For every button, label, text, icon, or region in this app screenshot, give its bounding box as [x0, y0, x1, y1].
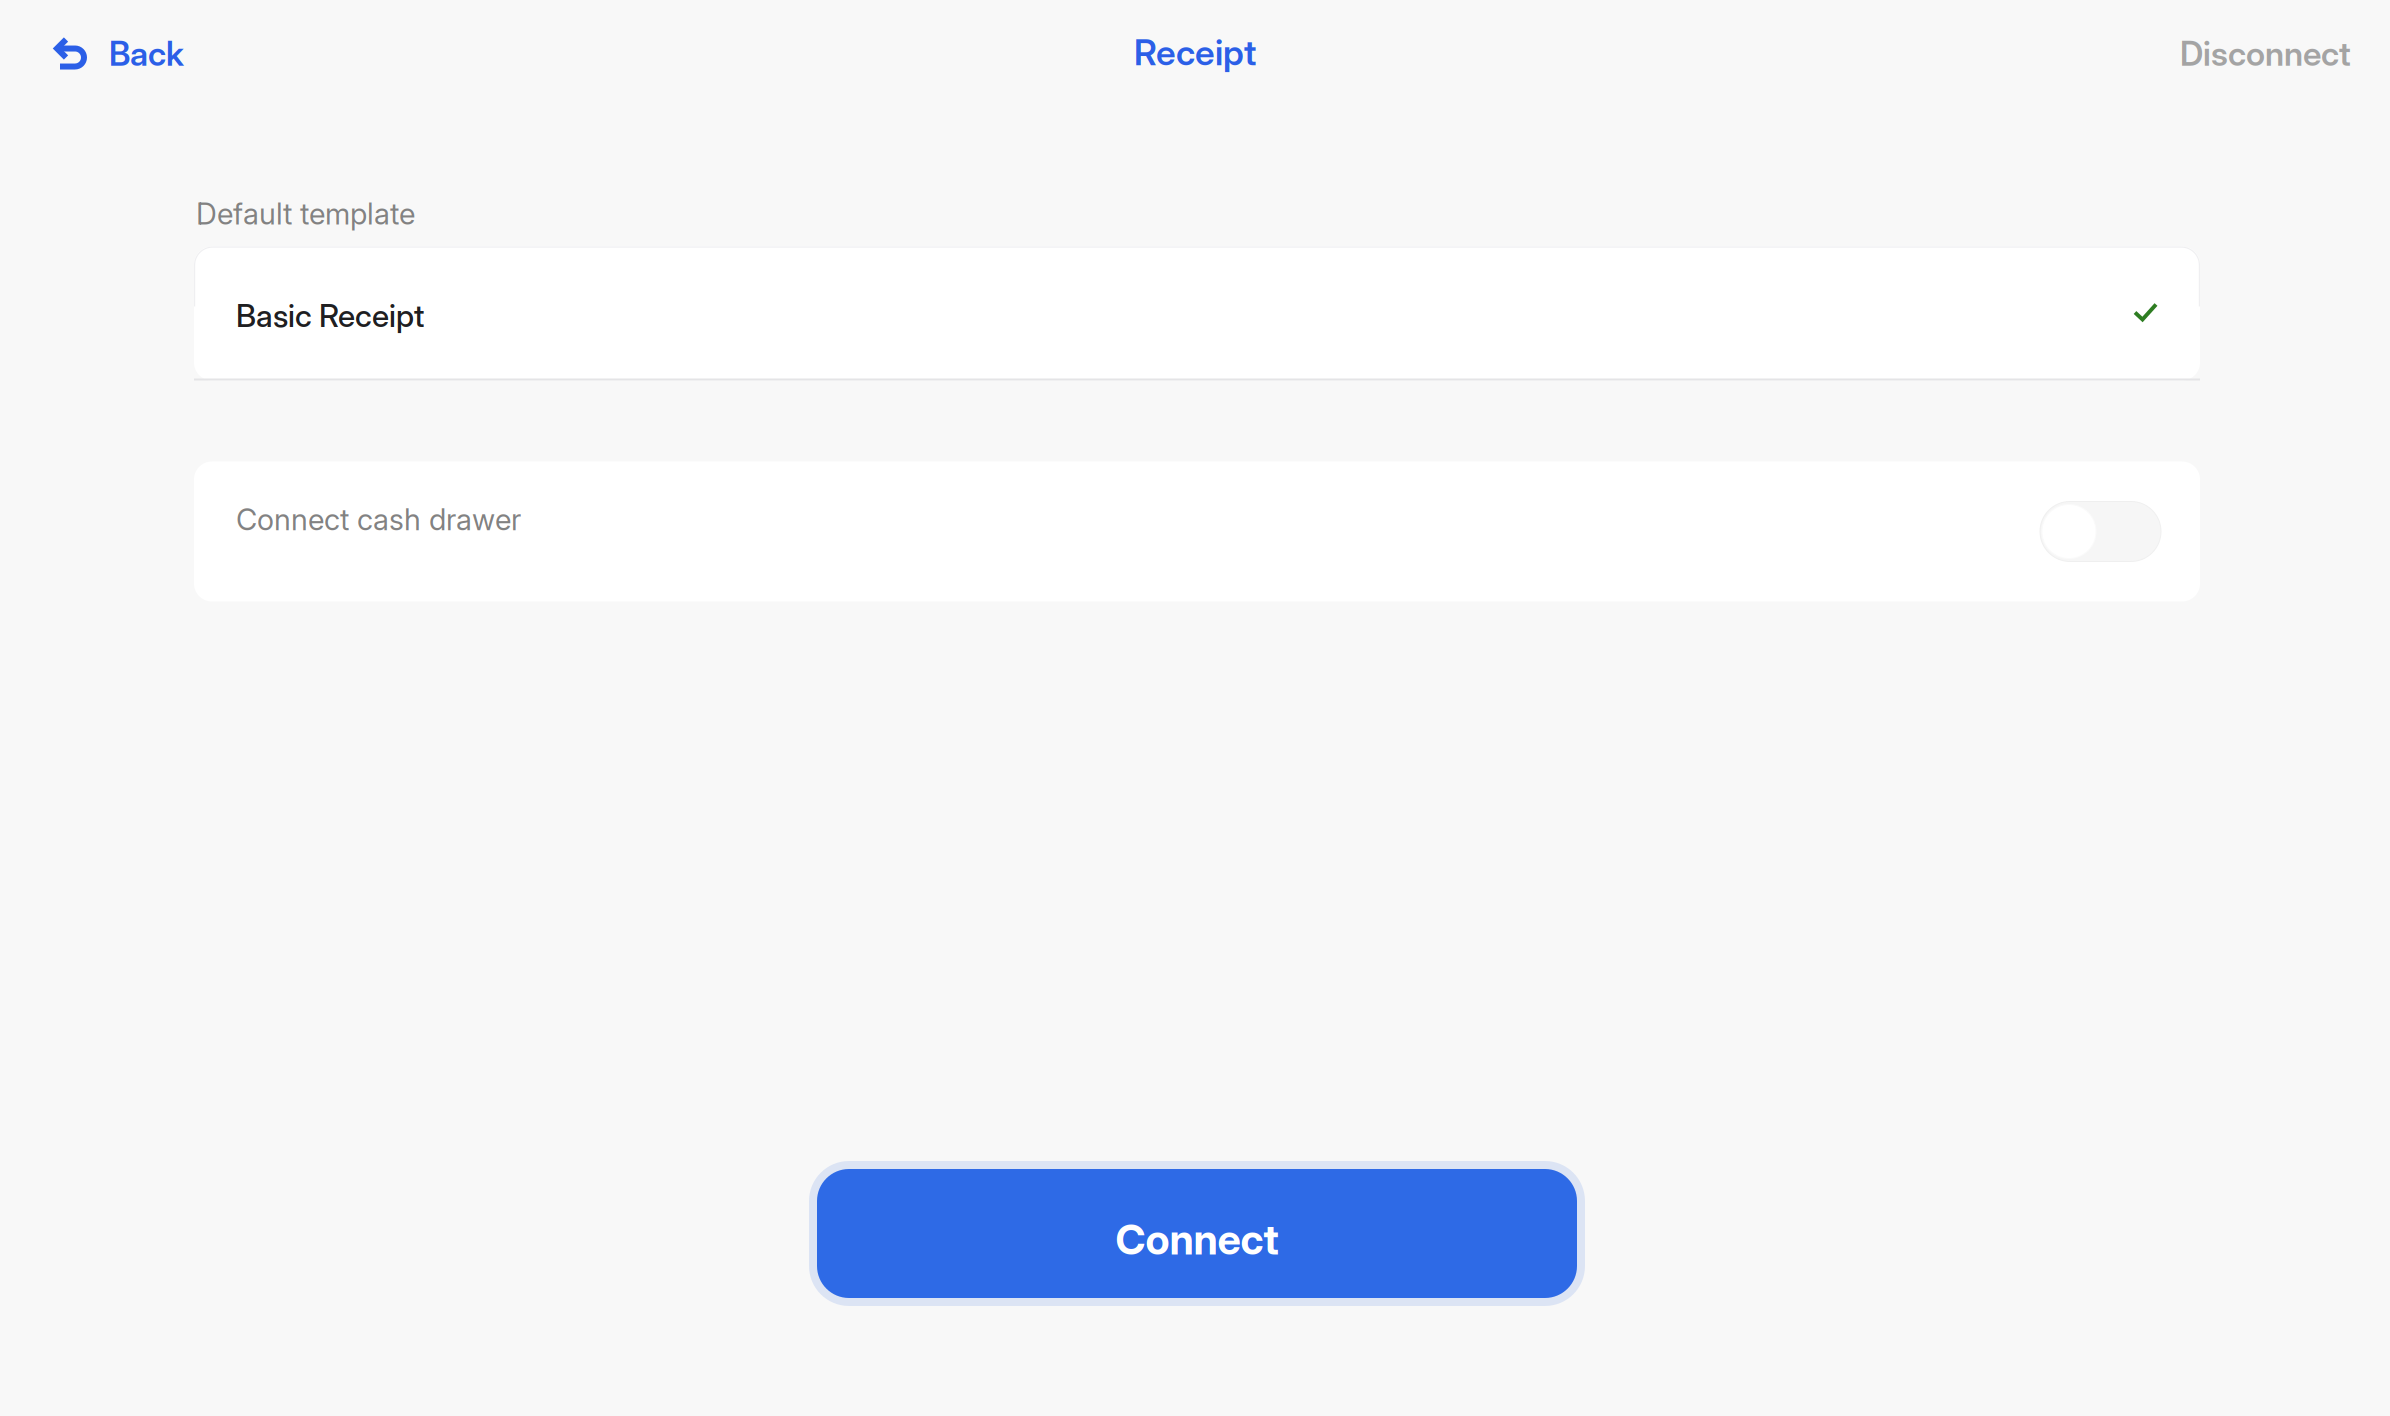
button[interactable]: Back — [0, 15, 208, 88]
staticText: Back — [109, 33, 184, 74]
staticText: Disconnect — [2180, 33, 2351, 74]
staticText: Connect cash drawer — [236, 502, 521, 537]
staticText: Connect — [1115, 1214, 1278, 1264]
button[interactable]: Connect — [807, 1161, 1583, 1306]
button[interactable]: Disconnect — [2156, 15, 2390, 88]
staticText: Receipt — [1134, 31, 1256, 74]
staticText: Default template — [196, 196, 415, 231]
staticText: Basic Receipt — [236, 296, 424, 334]
button[interactable]: Basic Receipt — [194, 246, 2200, 380]
button[interactable]: Connect cash drawer — [194, 461, 2200, 601]
